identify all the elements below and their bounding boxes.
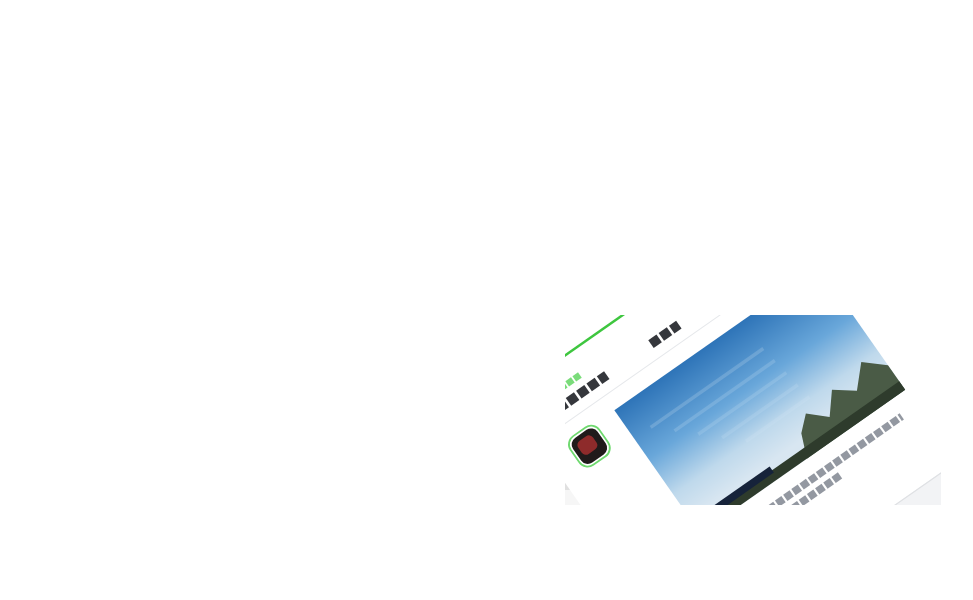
button[interactable]: Rotated app screenshot: [0, 0, 973, 600]
